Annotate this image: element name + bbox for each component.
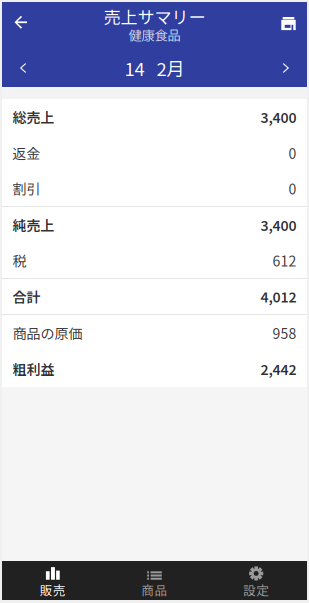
staticText: 販売 xyxy=(40,581,66,599)
staticText: 返金 xyxy=(12,143,40,163)
staticText: 純売上 xyxy=(12,215,54,235)
button[interactable]: 商品 xyxy=(104,561,205,600)
staticText: 958 xyxy=(272,323,296,343)
button[interactable]: 販売 xyxy=(2,561,104,600)
staticText: 2,442 xyxy=(260,359,296,379)
staticText: 総売上 xyxy=(12,107,54,127)
staticText: 0 xyxy=(288,143,296,163)
staticText: 0 xyxy=(288,178,296,199)
staticText: 健康食品 xyxy=(128,25,180,44)
staticText: 4,012 xyxy=(260,286,296,307)
button[interactable]: Previous day xyxy=(2,49,44,87)
staticText: 商品の原価 xyxy=(12,323,82,343)
staticText: 14 2月 xyxy=(124,55,184,81)
staticText: 商品 xyxy=(141,581,167,599)
staticText: 粗利益 xyxy=(12,359,54,379)
button[interactable]: 設定 xyxy=(205,561,307,600)
staticText: 3,400 xyxy=(260,215,296,235)
button[interactable]: Store xyxy=(270,2,307,49)
button[interactable]: Back xyxy=(2,2,40,49)
staticText: 3,400 xyxy=(260,107,296,127)
staticText: 設定 xyxy=(243,581,269,599)
staticText: 612 xyxy=(272,250,296,271)
button[interactable]: Next day xyxy=(265,49,307,87)
staticText: 合計 xyxy=(12,286,40,307)
staticText: 割引 xyxy=(12,178,40,199)
staticText: 売上サマリー xyxy=(103,4,205,29)
staticText: 税 xyxy=(12,250,26,271)
